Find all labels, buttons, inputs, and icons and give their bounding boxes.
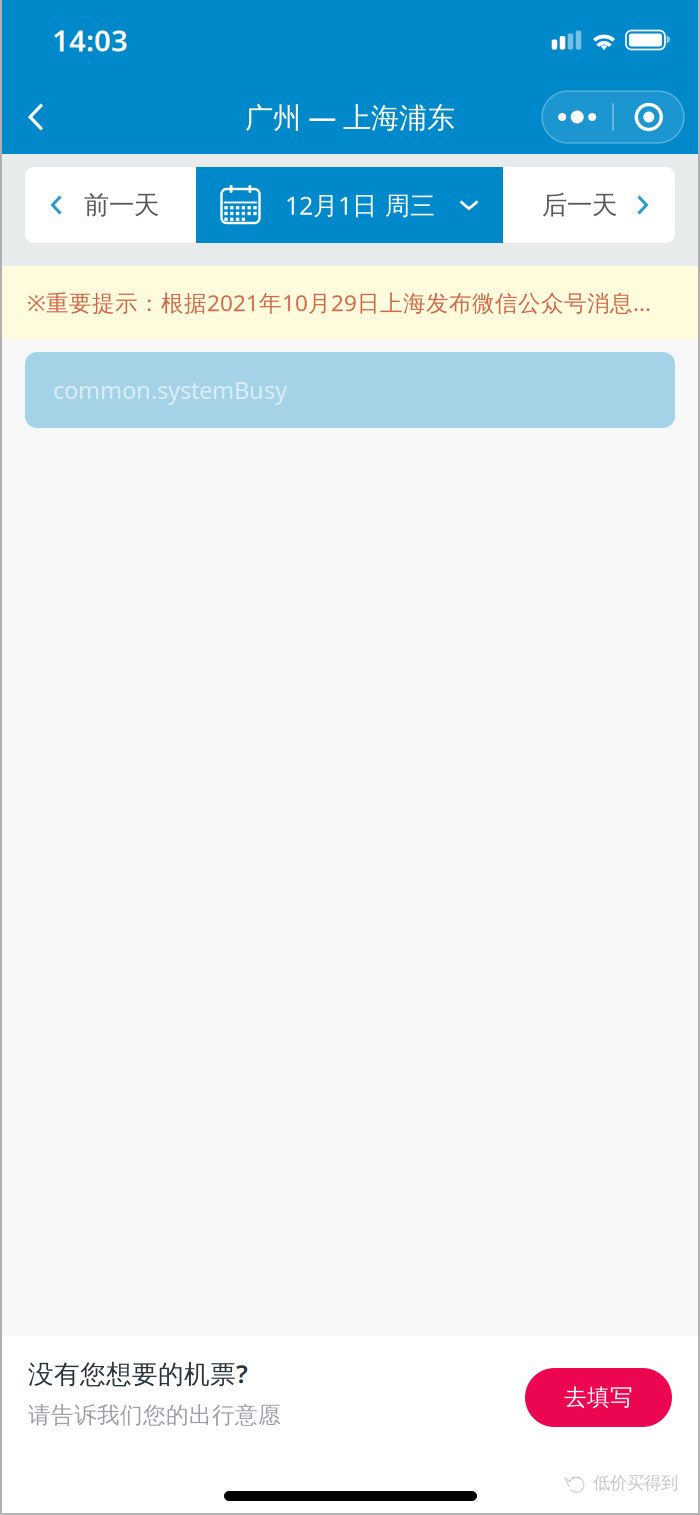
staticText: 14:03 <box>52 20 128 60</box>
staticText: 低价买得到 <box>593 1472 678 1494</box>
button[interactable]: 前一天 <box>25 167 196 243</box>
staticText: 12月1日 周三 <box>285 188 435 222</box>
staticText: 请告诉我们您的出行意愿 <box>28 1401 281 1429</box>
button[interactable]: 后一天 <box>503 167 675 243</box>
staticText: common.systemBusy <box>53 374 287 406</box>
button[interactable]: 去填写 <box>525 1368 672 1427</box>
staticText: 没有您想要的机票? <box>28 1356 248 1391</box>
button[interactable]: Back <box>2 80 70 154</box>
button[interactable]: Mini program menu <box>542 91 684 143</box>
staticText: 去填写 <box>564 1383 633 1412</box>
staticText: 前一天 <box>84 189 159 221</box>
staticText: 广州 — 上海浦东 <box>245 98 455 136</box>
staticText: 后一天 <box>542 189 617 221</box>
button[interactable]: 12月1日 周三 <box>196 167 503 243</box>
staticText: ※重要提示：根据2021年10月29日上海发布微信公众号消息... <box>27 287 651 318</box>
